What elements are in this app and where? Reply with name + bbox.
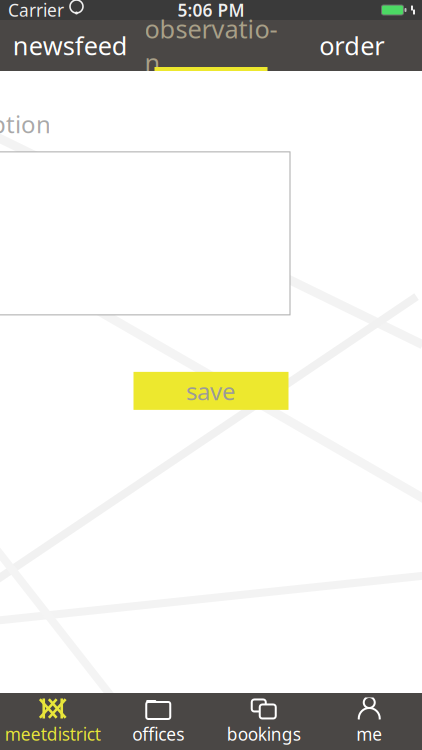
button[interactable]: bookings — [211, 693, 316, 750]
staticText: meetdistrict — [5, 722, 101, 745]
staticText: order — [319, 29, 384, 62]
button[interactable]: Choose photo from library — [415, 326, 422, 360]
button[interactable]: observation — [141, 20, 281, 71]
button[interactable]: meetdistrict — [0, 693, 105, 750]
button[interactable]: order — [281, 20, 422, 71]
button[interactable]: save — [133, 372, 288, 410]
staticText: bookings — [227, 722, 301, 745]
staticText — [64, 0, 69, 21]
staticText: offices — [132, 722, 184, 745]
staticText: Carrier — [8, 0, 64, 21]
staticText: newsfeed — [13, 29, 128, 62]
staticText: 5:06 PM — [177, 0, 244, 21]
staticText: description — [0, 108, 51, 140]
staticText: observation — [144, 12, 277, 79]
staticText: me — [356, 722, 382, 745]
button[interactable]: me — [316, 693, 422, 750]
staticText: save — [186, 375, 236, 407]
button[interactable]: newsfeed — [0, 20, 141, 71]
button[interactable]: offices — [105, 693, 211, 750]
